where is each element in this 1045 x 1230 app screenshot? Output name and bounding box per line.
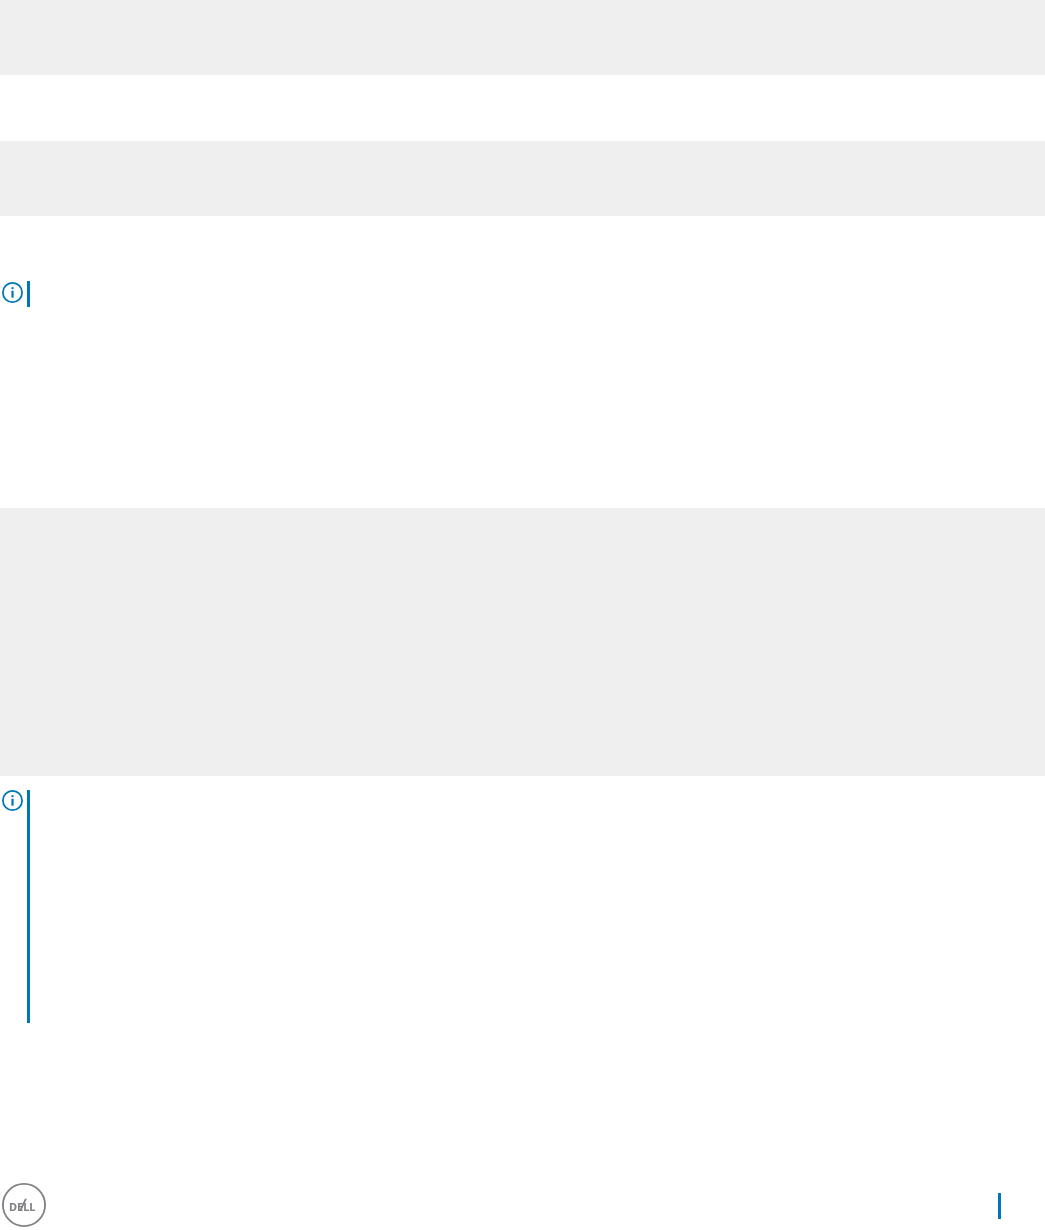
button[interactable]: Dell (2, 1183, 46, 1227)
staticText: DELL (9, 1199, 36, 1214)
button[interactable]: Note (2, 282, 23, 303)
button[interactable]: Note (2, 790, 23, 811)
